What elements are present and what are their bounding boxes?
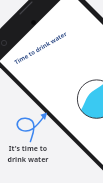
button[interactable]: Time to drink water <box>0 0 103 183</box>
staticText: Time to drink water <box>13 29 69 66</box>
button[interactable]: It's time to drink water <box>4 144 52 183</box>
staticText: It's time to drink water <box>4 144 52 183</box>
